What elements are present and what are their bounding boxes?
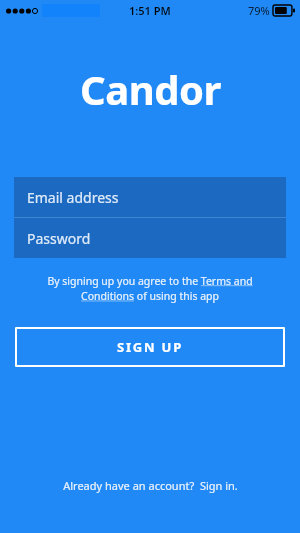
staticText: Email address bbox=[27, 188, 119, 207]
staticText: SIGN UP bbox=[117, 338, 184, 356]
button[interactable]: Already have an account? Sign in. bbox=[63, 478, 238, 493]
button[interactable]: SIGN UP bbox=[15, 327, 285, 367]
button[interactable]: Email address bbox=[14, 177, 286, 217]
staticText: Password bbox=[27, 229, 91, 248]
staticText: 79% bbox=[248, 3, 270, 18]
staticText: Candor bbox=[80, 62, 221, 116]
staticText: Already have an account? Sign in. bbox=[63, 478, 238, 493]
staticText: 1:51 PM bbox=[129, 3, 171, 18]
button[interactable]: Password bbox=[14, 218, 286, 258]
other: Battery 79 percent bbox=[273, 5, 295, 16]
staticText: By signing up you agree to the Terms and… bbox=[34, 274, 266, 303]
